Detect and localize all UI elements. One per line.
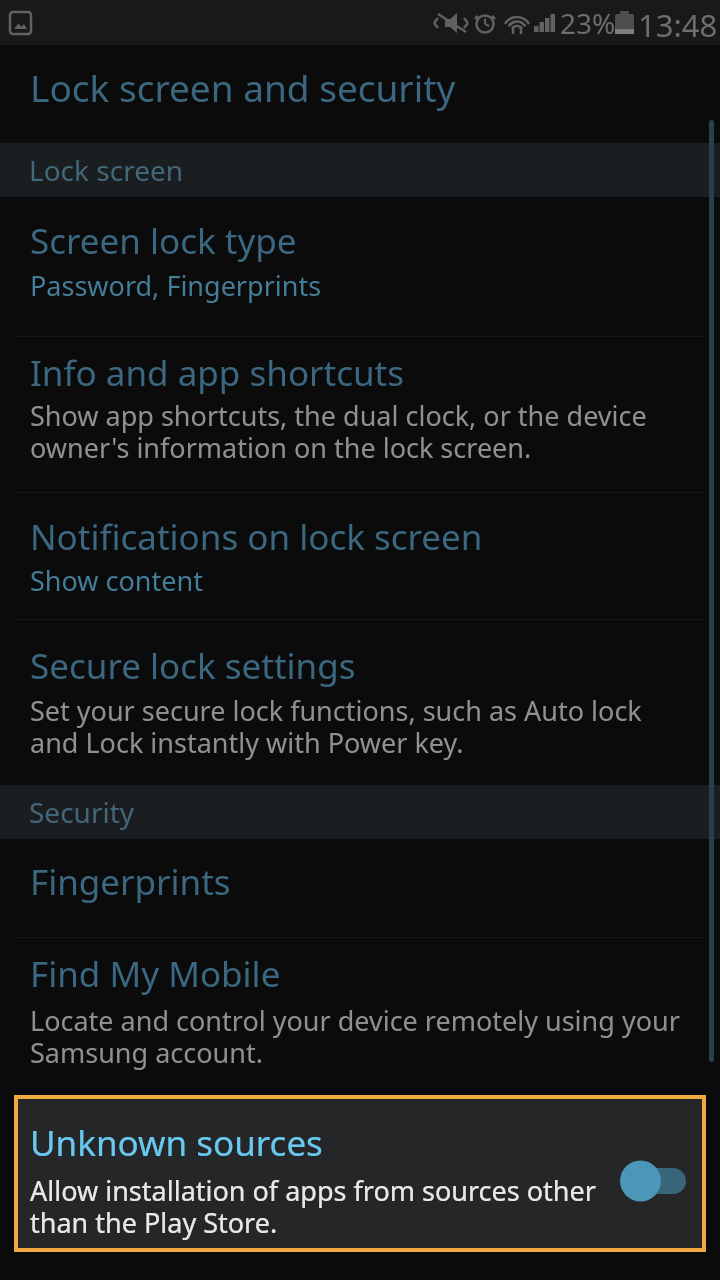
button[interactable]: Notifications on lock screen: [0, 493, 720, 619]
staticText: Lock screen and security: [30, 62, 456, 112]
staticText: Fingerprints: [30, 858, 231, 906]
staticText: Find My Mobile: [30, 950, 281, 998]
staticText: 13:48: [638, 4, 718, 46]
button[interactable]: Find My Mobile: [0, 938, 720, 1095]
staticText: Secure lock settings: [30, 642, 356, 690]
staticText: Show app shortcuts, the dual clock, or t…: [30, 397, 647, 466]
staticText: Locate and control your device remotely …: [30, 1002, 680, 1071]
staticText: Lock screen: [29, 151, 184, 189]
button[interactable]: Fingerprints: [0, 839, 720, 937]
staticText: Password, Fingerprints: [30, 267, 322, 304]
staticText: Security: [29, 793, 135, 831]
staticText: Allow installation of apps from sources …: [30, 1172, 596, 1241]
staticText: Unknown sources: [30, 1119, 323, 1167]
staticText: Show content: [30, 562, 203, 599]
staticText: Notifications on lock screen: [30, 513, 483, 561]
button[interactable]: Unknown sources: [14, 1095, 706, 1252]
button[interactable]: Screen lock type: [0, 197, 720, 336]
button[interactable]: Info and app shortcuts: [0, 337, 720, 492]
staticText: Info and app shortcuts: [30, 349, 404, 397]
button[interactable]: Secure lock settings: [0, 620, 720, 785]
staticText: Screen lock type: [30, 217, 297, 265]
staticText: Set your secure lock functions, such as …: [30, 692, 642, 761]
staticText: 23%: [560, 4, 616, 42]
